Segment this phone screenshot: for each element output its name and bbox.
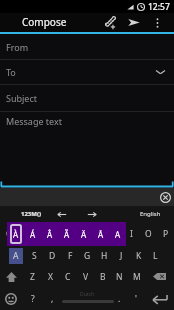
- button[interactable]: C: [59, 266, 77, 287]
- staticText: E: [43, 228, 48, 240]
- staticText: Á: [30, 229, 36, 240]
- staticText: Message text: [6, 115, 63, 127]
- button[interactable]: D: [45, 248, 59, 264]
- button[interactable]: O: [140, 222, 157, 246]
- staticText: ?: [31, 293, 35, 305]
- button[interactable]: Send: [122, 13, 145, 32]
- button[interactable]: From: [0, 34, 174, 59]
- button[interactable]: H: [98, 248, 111, 264]
- button[interactable]: Q: [0, 222, 18, 246]
- button[interactable]: Emoji: [0, 287, 22, 310]
- staticText: P: [163, 228, 169, 240]
- button[interactable]: More options: [147, 13, 168, 32]
- staticText: F: [68, 250, 73, 262]
- button[interactable]: S: [27, 248, 41, 264]
- staticText: A: [13, 250, 19, 262]
- staticText: B: [100, 271, 106, 283]
- staticText: Compose: [22, 15, 67, 29]
- button[interactable]: Ä: [75, 222, 92, 246]
- button[interactable]: K: [132, 248, 145, 264]
- button[interactable]: To: [0, 60, 174, 84]
- button[interactable]: L: [149, 248, 162, 264]
- staticText: K: [136, 250, 142, 262]
- button[interactable]: R: [54, 222, 72, 246]
- button[interactable]: Space: [60, 287, 115, 310]
- button[interactable]: A: [109, 222, 126, 246]
- button[interactable]: 123M(): [19, 206, 43, 222]
- staticText: 12:57: [148, 1, 170, 13]
- staticText: U: [111, 228, 118, 240]
- staticText: Y: [95, 228, 100, 240]
- button[interactable]: Z: [23, 266, 41, 287]
- button[interactable]: Subject: [0, 85, 174, 111]
- staticText: W: [23, 228, 31, 240]
- button[interactable]: V: [77, 266, 94, 287]
- staticText: M: [133, 271, 141, 283]
- staticText: A: [115, 229, 121, 240]
- staticText: Ä: [81, 229, 87, 240]
- button[interactable]: W: [18, 222, 36, 246]
- button[interactable]: Á: [24, 222, 41, 246]
- staticText: Z: [30, 271, 35, 283]
- staticText: N: [116, 271, 123, 283]
- staticText: G: [84, 250, 91, 262]
- button[interactable]: B: [94, 266, 111, 287]
- staticText: To: [6, 66, 16, 78]
- button[interactable]: A: [9, 248, 23, 264]
- staticText: .: [118, 293, 121, 305]
- staticText: ': [135, 293, 137, 305]
- staticText: D: [49, 250, 56, 262]
- button[interactable]: T: [72, 222, 89, 246]
- button[interactable]: F: [63, 248, 77, 264]
- staticText: I: [130, 228, 133, 240]
- button[interactable]: G: [81, 248, 94, 264]
- button[interactable]: À: [10, 224, 22, 244]
- button[interactable]: Attach file: [98, 13, 122, 32]
- staticText: English: [140, 210, 161, 218]
- button[interactable]: English: [132, 206, 168, 222]
- staticText: À: [13, 229, 19, 240]
- button[interactable]: Å: [92, 222, 109, 246]
- staticText: J: [120, 250, 123, 262]
- button[interactable]: ': [127, 287, 145, 310]
- button[interactable]: ,: [44, 287, 60, 310]
- staticText: T: [78, 228, 83, 240]
- button[interactable]: Previous: [52, 206, 72, 222]
- staticText: H: [101, 250, 108, 262]
- button[interactable]: Â: [41, 222, 58, 246]
- button[interactable]: X: [41, 266, 59, 287]
- staticText: R: [60, 228, 66, 240]
- staticText: Å: [98, 229, 104, 240]
- button[interactable]: U: [106, 222, 123, 246]
- button[interactable]: P: [157, 222, 174, 246]
- button[interactable]: Next: [82, 206, 102, 222]
- button[interactable]: J: [115, 248, 128, 264]
- button[interactable]: .: [111, 287, 127, 310]
- staticText: Dutch: [80, 291, 95, 298]
- staticText: L: [153, 250, 158, 262]
- staticText: 123M(): [21, 210, 42, 218]
- button[interactable]: M: [128, 266, 145, 287]
- staticText: X: [48, 271, 53, 283]
- button[interactable]: Backspace: [145, 266, 174, 287]
- staticText: Ã: [64, 229, 70, 240]
- staticText: S: [32, 250, 37, 262]
- button[interactable]: Message text: [0, 112, 174, 188]
- staticText: O: [145, 228, 152, 240]
- button[interactable]: Y: [89, 222, 106, 246]
- button[interactable]: Shift: [0, 266, 23, 287]
- button[interactable]: Enter: [145, 287, 174, 310]
- button[interactable]: N: [111, 266, 128, 287]
- staticText: Â: [47, 229, 53, 240]
- staticText: C: [65, 271, 71, 283]
- button[interactable]: E: [36, 222, 54, 246]
- button[interactable]: Close: [158, 190, 172, 204]
- staticText: Subject: [6, 92, 38, 104]
- button[interactable]: ?: [22, 287, 44, 310]
- staticText: V: [83, 271, 89, 283]
- staticText: Q: [6, 228, 13, 240]
- staticText: From: [6, 41, 29, 53]
- button[interactable]: Ã: [58, 222, 75, 246]
- staticText: ,: [51, 293, 54, 305]
- button[interactable]: I: [123, 222, 140, 246]
